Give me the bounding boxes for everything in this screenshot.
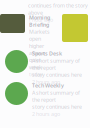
button[interactable]: Morning Briefing bbox=[0, 14, 90, 78]
staticText: Tech Weekly bbox=[32, 82, 64, 89]
staticText: Sports Desk bbox=[32, 50, 62, 57]
button[interactable]: Tech Weekly bbox=[0, 82, 90, 117]
staticText: story continues here bbox=[32, 71, 82, 78]
staticText: 2 hours ago bbox=[32, 110, 60, 117]
staticText: today bbox=[29, 71, 43, 78]
button[interactable]: continues from the story above bbox=[28, 2, 90, 23]
staticText: 2 hours ago bbox=[32, 78, 60, 85]
staticText: Morning Briefing bbox=[29, 14, 50, 28]
staticText: 1 hour ago bbox=[28, 16, 53, 23]
staticText: A short summary of the report bbox=[32, 57, 80, 71]
staticText: Markets open higher bbox=[29, 28, 50, 49]
button[interactable]: Sports Desk bbox=[0, 50, 90, 85]
staticText: A short summary of the report bbox=[32, 89, 80, 103]
staticText: continues from the story above bbox=[28, 2, 88, 16]
staticText: story continues here bbox=[32, 103, 82, 110]
staticText: after a quiet week bbox=[29, 49, 45, 71]
